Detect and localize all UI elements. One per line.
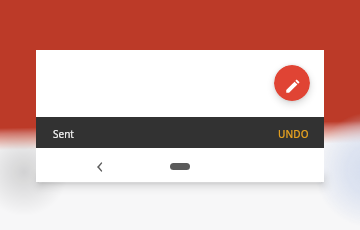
button[interactable]: Compose — [274, 65, 310, 101]
staticText: Sent — [53, 127, 74, 141]
button[interactable]: Home — [162, 156, 198, 176]
staticText: UNDO — [278, 127, 309, 141]
button[interactable]: UNDO — [262, 126, 324, 140]
button[interactable]: Back — [88, 155, 112, 179]
